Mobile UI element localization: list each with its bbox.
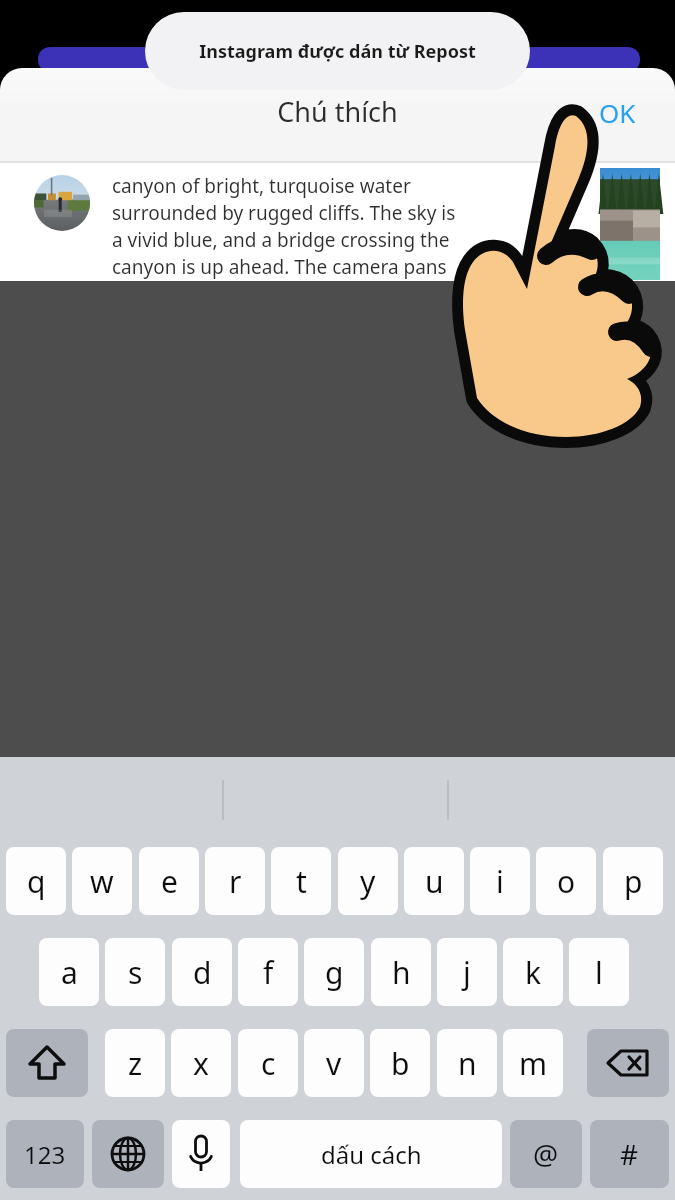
staticText: canyon of bright, turquoise water surrou… xyxy=(112,173,456,280)
staticText: i xyxy=(496,861,504,902)
staticText: e xyxy=(161,861,178,902)
staticText: q xyxy=(27,861,46,902)
button[interactable]: z xyxy=(105,1029,165,1097)
staticText: f xyxy=(263,952,274,993)
button[interactable]: e xyxy=(139,847,199,915)
button[interactable]: Backspace xyxy=(587,1029,669,1097)
button[interactable]: l xyxy=(569,938,629,1006)
button[interactable]: Shift xyxy=(6,1029,88,1097)
button[interactable]: h xyxy=(371,938,431,1006)
staticText: OK xyxy=(599,95,636,130)
button[interactable]: y xyxy=(338,847,398,915)
button[interactable]: OK xyxy=(573,89,661,135)
button[interactable]: m xyxy=(503,1029,563,1097)
button[interactable]: j xyxy=(437,938,497,1006)
staticText: v xyxy=(326,1043,342,1084)
staticText: h xyxy=(392,952,411,993)
button[interactable]: r xyxy=(205,847,265,915)
other: Pointer xyxy=(0,0,675,1200)
staticText: c xyxy=(261,1043,276,1084)
button[interactable]: b xyxy=(370,1029,430,1097)
button[interactable]: w xyxy=(72,847,132,915)
staticText: o xyxy=(557,861,576,902)
button[interactable]: Instagram được dán từ Repost xyxy=(145,12,530,90)
staticText: l xyxy=(595,952,603,993)
staticText: @ xyxy=(533,1135,559,1173)
staticText: n xyxy=(458,1043,477,1084)
button[interactable]: k xyxy=(503,938,563,1006)
staticText: x xyxy=(193,1043,209,1084)
button[interactable]: d xyxy=(172,938,232,1006)
staticText: j xyxy=(463,952,471,993)
staticText: # xyxy=(620,1135,639,1173)
button[interactable]: c xyxy=(238,1029,298,1097)
staticText: m xyxy=(519,1043,548,1084)
button[interactable]: x xyxy=(171,1029,231,1097)
button[interactable]: n xyxy=(437,1029,497,1097)
staticText: z xyxy=(128,1043,143,1084)
staticText: w xyxy=(90,861,114,902)
button[interactable]: q xyxy=(6,847,66,915)
staticText: Instagram được dán từ Repost xyxy=(199,39,476,64)
button[interactable]: f xyxy=(238,938,298,1006)
staticText: b xyxy=(391,1043,410,1084)
button[interactable]: t xyxy=(271,847,331,915)
button[interactable]: a xyxy=(39,938,99,1006)
staticText: d xyxy=(193,952,212,993)
button[interactable]: i xyxy=(470,847,530,915)
staticText: dấu cách xyxy=(321,1138,422,1171)
button[interactable]: 123 xyxy=(6,1120,84,1188)
button[interactable]: u xyxy=(404,847,464,915)
staticText: u xyxy=(425,861,444,902)
button[interactable]: v xyxy=(304,1029,364,1097)
staticText: p xyxy=(624,861,643,902)
staticText: k xyxy=(525,952,542,993)
staticText: 123 xyxy=(24,1138,66,1171)
staticText: s xyxy=(128,952,143,993)
staticText: a xyxy=(61,952,78,993)
button[interactable]: # xyxy=(590,1120,669,1188)
staticText: r xyxy=(229,861,242,902)
staticText: y xyxy=(360,861,376,902)
button[interactable]: @ xyxy=(510,1120,582,1188)
button[interactable]: dấu cách xyxy=(240,1120,502,1188)
button[interactable]: p xyxy=(603,847,663,915)
button[interactable]: o xyxy=(536,847,596,915)
button[interactable]: Voice input xyxy=(172,1120,230,1188)
staticText: Chú thích xyxy=(277,93,398,130)
button[interactable]: s xyxy=(105,938,165,1006)
staticText: t xyxy=(296,861,307,902)
staticText: g xyxy=(325,952,344,993)
button[interactable]: g xyxy=(304,938,364,1006)
button[interactable]: Switch language xyxy=(92,1120,164,1188)
